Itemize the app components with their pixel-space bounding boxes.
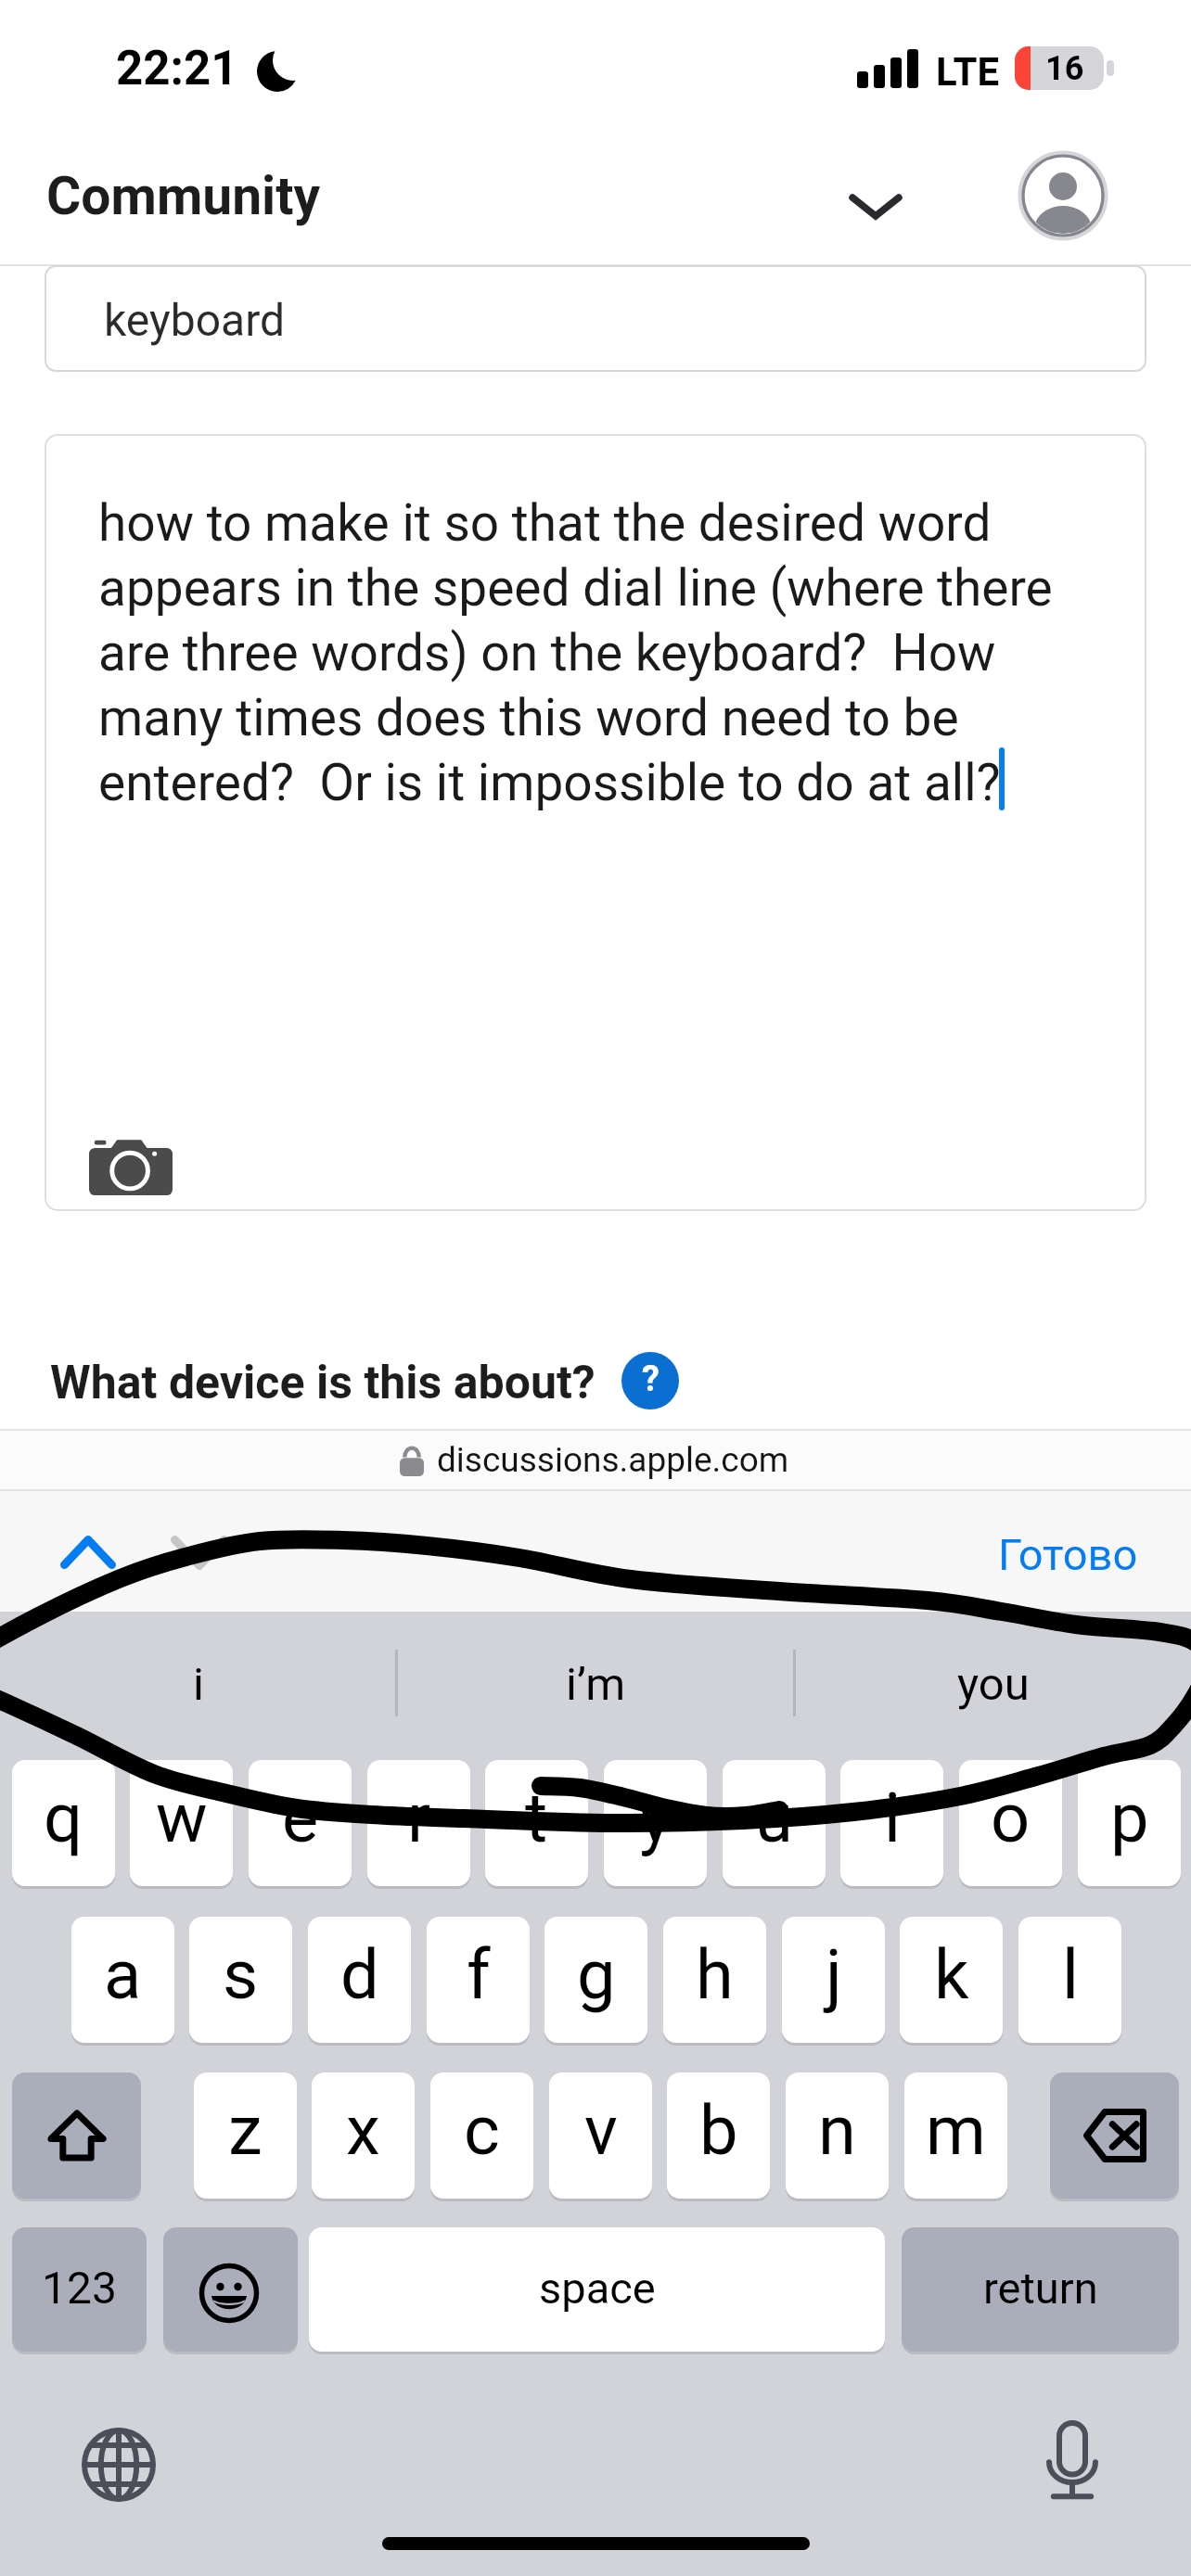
staticText: how to make it so that the desired word … [98, 493, 1109, 813]
staticText: ? [642, 1358, 660, 1400]
button[interactable]: i [0, 1612, 396, 1760]
button[interactable]: m [904, 2072, 1007, 2199]
staticText: 123 [42, 2262, 117, 2314]
button[interactable]: Emoji [163, 2227, 298, 2352]
button[interactable]: Dictation [1017, 2404, 1128, 2516]
staticText: d [340, 1934, 379, 2015]
button[interactable]: b [667, 2072, 770, 2199]
staticText: w [156, 1778, 208, 1858]
staticText: 16 [1045, 49, 1084, 88]
button[interactable]: j [782, 1917, 885, 2043]
staticText: Готово [998, 1529, 1138, 1580]
button[interactable]: how to make it so that the desired word … [45, 434, 1146, 1211]
staticText: g [577, 1934, 616, 2015]
staticText: z [228, 2090, 263, 2171]
staticText: i’m [566, 1658, 626, 1711]
button[interactable]: Готово [981, 1508, 1154, 1595]
button[interactable]: v [549, 2072, 652, 2199]
staticText: y [639, 1778, 672, 1858]
staticText: space [539, 2263, 656, 2314]
button[interactable]: Backspace [1050, 2072, 1179, 2199]
staticText: discussions.apple.com [437, 1440, 789, 1480]
staticText: l [1062, 1934, 1079, 2015]
staticText: return [983, 2263, 1098, 2314]
button[interactable]: space [309, 2227, 885, 2352]
button[interactable]: n [786, 2072, 889, 2199]
button[interactable]: Help [621, 1352, 679, 1409]
staticText: e [282, 1778, 319, 1858]
button[interactable]: g [544, 1917, 647, 2043]
button[interactable]: t [485, 1760, 588, 1886]
staticText: f [467, 1934, 491, 2015]
button[interactable]: i’m [396, 1612, 795, 1760]
staticText: u [755, 1778, 793, 1858]
button[interactable]: i [840, 1760, 943, 1886]
button[interactable]: Change keyboard [63, 2409, 174, 2520]
button[interactable]: d [308, 1917, 411, 2043]
button[interactable]: Previous field [37, 1511, 139, 1593]
button[interactable]: x [312, 2072, 415, 2199]
button[interactable]: z [194, 2072, 297, 2199]
button[interactable]: w [130, 1760, 233, 1886]
button[interactable]: r [367, 1760, 470, 1886]
button[interactable]: s [189, 1917, 292, 2043]
button[interactable]: c [430, 2072, 533, 2199]
staticText: i [193, 1658, 204, 1711]
staticText: m [926, 2090, 986, 2171]
button[interactable]: k [900, 1917, 1003, 2043]
staticText: i [884, 1778, 901, 1858]
staticText: LTE [936, 49, 1000, 95]
button[interactable]: Shift [12, 2072, 141, 2199]
button[interactable]: Next field [148, 1511, 250, 1593]
staticText: q [44, 1778, 83, 1858]
button[interactable]: h [663, 1917, 766, 2043]
staticText: n [818, 2090, 856, 2171]
staticText: j [826, 1934, 842, 2015]
button[interactable]: q [12, 1760, 115, 1886]
staticText: you [957, 1658, 1030, 1711]
button[interactable]: f [427, 1917, 530, 2043]
staticText: x [346, 2090, 380, 2171]
staticText: b [699, 2090, 738, 2171]
button[interactable]: Expand menu [820, 151, 931, 262]
staticText: k [934, 1934, 969, 2015]
staticText: r [407, 1778, 431, 1858]
button[interactable]: a [71, 1917, 174, 2043]
staticText: o [991, 1778, 1031, 1858]
button[interactable]: p [1078, 1760, 1181, 1886]
button[interactable]: keyboard [45, 265, 1146, 372]
staticText: What device is this about? [50, 1356, 595, 1410]
button[interactable]: Numbers [12, 2227, 147, 2352]
button[interactable]: Account [1017, 149, 1109, 242]
staticText: p [1110, 1778, 1149, 1858]
staticText: keyboard [104, 294, 286, 346]
button[interactable]: Return [902, 2227, 1179, 2352]
button[interactable]: y [604, 1760, 707, 1886]
staticText: t [525, 1778, 548, 1858]
button[interactable]: o [959, 1760, 1062, 1886]
button[interactable]: you [795, 1612, 1191, 1760]
staticText: v [584, 2090, 618, 2171]
staticText: s [223, 1934, 259, 2015]
staticText: a [104, 1934, 142, 2015]
staticText: 22:21 [116, 41, 238, 96]
staticText: c [464, 2090, 500, 2171]
staticText: Community [46, 165, 321, 227]
button[interactable]: u [723, 1760, 826, 1886]
button[interactable]: Add photo [89, 1137, 173, 1195]
button[interactable]: l [1018, 1917, 1121, 2043]
staticText: h [696, 1934, 734, 2015]
button[interactable]: e [249, 1760, 352, 1886]
